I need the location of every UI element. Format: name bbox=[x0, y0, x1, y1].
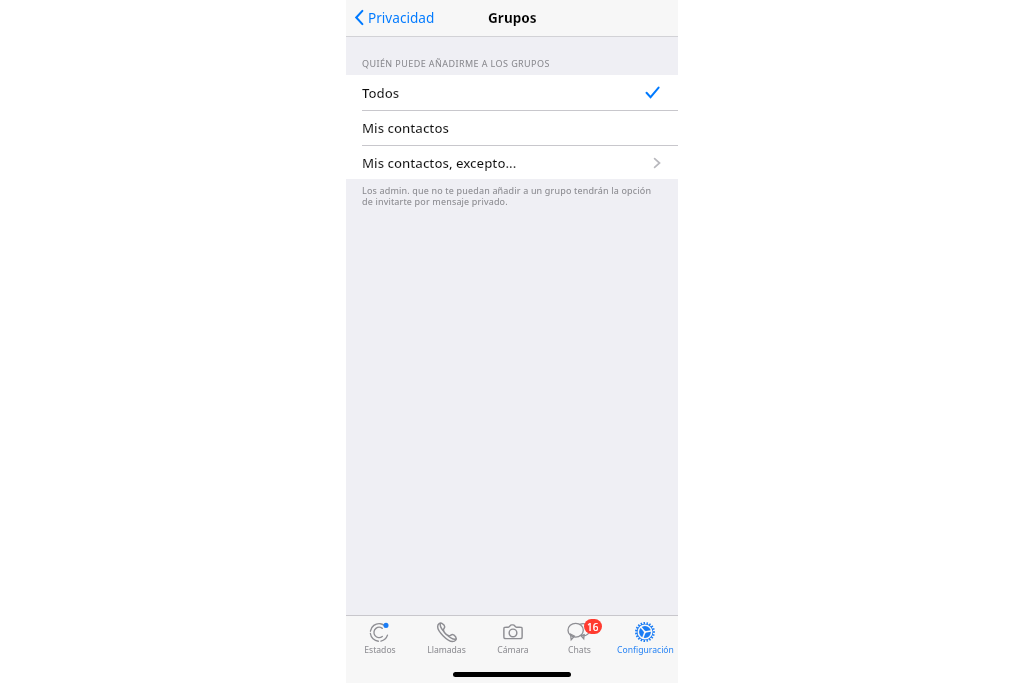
button[interactable]: Mis contactos bbox=[346, 111, 678, 145]
staticText: Llamadas bbox=[427, 644, 466, 656]
staticText: Estados bbox=[364, 644, 396, 656]
button[interactable]: Llamadas bbox=[413, 621, 480, 660]
staticText: Todos bbox=[362, 84, 400, 102]
button[interactable]: Todos bbox=[346, 75, 678, 110]
button[interactable]: Cámara bbox=[480, 621, 546, 660]
button[interactable]: Configuración bbox=[612, 621, 678, 660]
staticText: Grupos bbox=[488, 8, 537, 27]
staticText: Los admin. que no te puedan añadir a un … bbox=[362, 184, 652, 208]
button[interactable]: Back to Privacidad bbox=[346, 0, 443, 35]
staticText: Cámara bbox=[497, 644, 529, 656]
staticText: Mis contactos, excepto... bbox=[362, 154, 517, 172]
staticText: Privacidad bbox=[368, 8, 435, 27]
staticText: QUIÉN PUEDE AÑADIRME A LOS GRUPOS bbox=[362, 57, 550, 69]
staticText: Chats bbox=[568, 644, 591, 656]
button[interactable]: 16 bbox=[546, 621, 612, 660]
button[interactable]: Estados bbox=[346, 621, 413, 660]
button[interactable]: Mis contactos, excepto... bbox=[346, 146, 678, 179]
staticText: Configuración bbox=[617, 644, 674, 656]
staticText: Mis contactos bbox=[362, 119, 449, 137]
staticText: 16 bbox=[587, 620, 599, 634]
